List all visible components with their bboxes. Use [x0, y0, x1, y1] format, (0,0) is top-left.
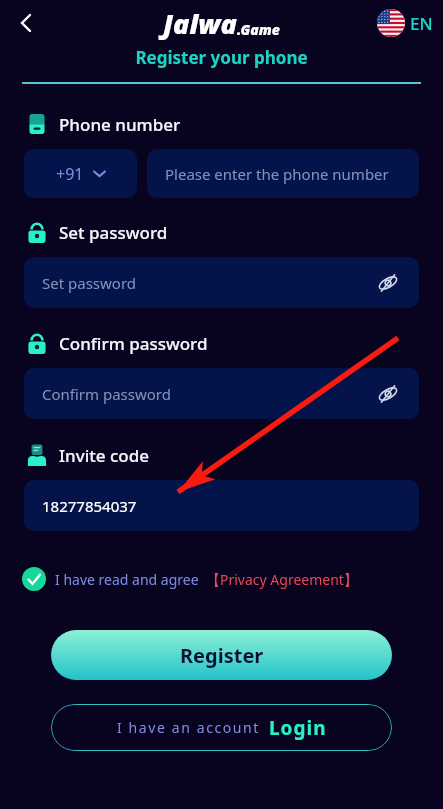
staticText: .Game — [237, 20, 280, 39]
button[interactable]: Back — [6, 3, 46, 43]
button[interactable]: Register — [51, 630, 392, 680]
button[interactable]: Confirm password — [24, 368, 419, 419]
staticText: Confirm password — [59, 332, 208, 355]
staticText: Please enter the phone number — [165, 164, 389, 184]
button[interactable]: Set password — [24, 257, 419, 308]
staticText: 18277854037 — [42, 496, 137, 516]
button[interactable]: Please enter the phone number — [147, 149, 419, 198]
button[interactable]: 18277854037 — [24, 480, 419, 531]
button[interactable]: Language EN — [377, 9, 433, 37]
staticText: Set password — [42, 273, 137, 293]
staticText: Set password — [59, 221, 168, 244]
staticText: I have an account — [117, 718, 261, 737]
button[interactable]: I have an account — [51, 704, 392, 751]
staticText: Confirm password — [42, 384, 171, 404]
staticText: Phone number — [59, 113, 181, 136]
staticText: EN — [410, 12, 433, 35]
button[interactable]: Show password — [373, 268, 403, 298]
staticText: 【Privacy Agreement】 — [206, 570, 358, 589]
staticText: +91 — [56, 163, 84, 185]
staticText: Invite code — [59, 444, 149, 467]
staticText: Register your phone — [0, 46, 443, 69]
staticText: Login — [269, 715, 327, 741]
staticText: Jalwa — [163, 5, 237, 42]
button[interactable]: Show password — [373, 379, 403, 409]
button[interactable]: +91 — [24, 149, 137, 198]
staticText: I have read and agree — [55, 570, 199, 589]
staticText: Register — [180, 642, 264, 669]
button[interactable]: I have read and agree — [22, 567, 358, 591]
